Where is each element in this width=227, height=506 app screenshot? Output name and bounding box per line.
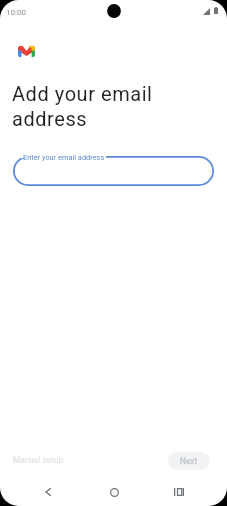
button[interactable]: Recent apps: [169, 482, 189, 502]
staticText: Add your email address: [12, 82, 153, 131]
button[interactable]: Enter your email address: [13, 156, 214, 186]
staticText: Enter your email address: [23, 153, 105, 162]
button[interactable]: Next: [168, 452, 210, 470]
staticText: 10:00: [6, 7, 27, 16]
staticText: Next: [180, 456, 198, 466]
button[interactable]: Home: [104, 482, 124, 502]
button[interactable]: Back: [38, 482, 58, 502]
staticText: Manual setup: [13, 455, 64, 465]
button[interactable]: Manual setup: [5, 450, 72, 470]
